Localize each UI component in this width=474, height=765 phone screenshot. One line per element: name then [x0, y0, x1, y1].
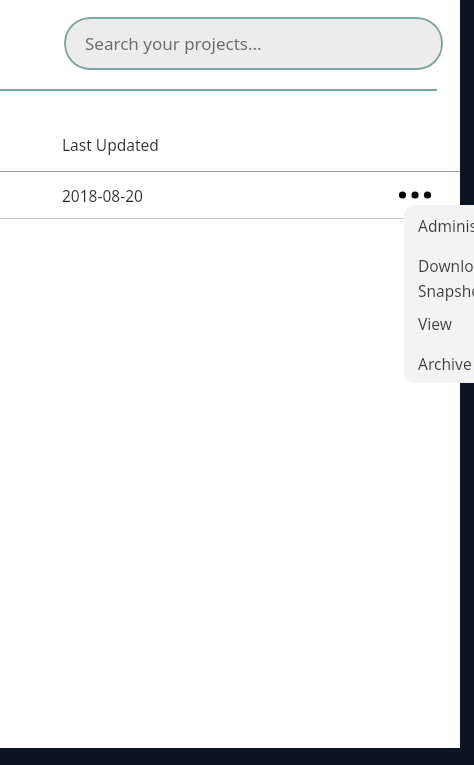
staticText: Administer [418, 215, 474, 236]
staticText: Archive [418, 353, 472, 374]
button[interactable]: Administer [404, 205, 474, 245]
button[interactable]: More options [395, 175, 435, 215]
button[interactable]: Search your projects... [64, 17, 443, 70]
staticText: Search your projects... [85, 32, 262, 55]
staticText: Last Updated [62, 134, 159, 155]
staticText: Snapshot [418, 280, 474, 301]
button[interactable]: Download [404, 245, 474, 303]
button[interactable]: 2018-08-20 [0, 172, 460, 218]
staticText: View [418, 313, 452, 334]
staticText: 2018-08-20 [62, 185, 143, 206]
button[interactable]: Archive [404, 343, 474, 383]
staticText: Download [418, 255, 474, 276]
button[interactable]: View [404, 303, 474, 343]
